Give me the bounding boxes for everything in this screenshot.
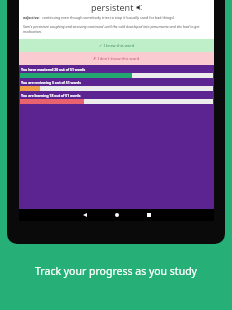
staticText: You have mastered 20 out of 51 words (21, 67, 86, 72)
staticText: persistent (91, 1, 134, 13)
button[interactable]: Back (76, 209, 94, 221)
staticText: continuing even though somebody tries to… (42, 15, 175, 20)
staticText: ✓ I knew this word (99, 43, 135, 48)
button[interactable]: Home (108, 209, 126, 221)
staticText: adjective: (23, 15, 40, 20)
button[interactable]: ✓ I knew this word (19, 39, 214, 52)
button[interactable]: ✗ I don't know this word (19, 52, 214, 65)
button[interactable]: Pronounce (136, 4, 143, 11)
staticText: ✗ I don't know this word (93, 56, 140, 61)
staticText: You are reviewing 5 out of 51 words (21, 80, 81, 85)
button[interactable]: Recent apps (140, 209, 158, 221)
staticText: You are learning 18 out of 51 words (21, 93, 81, 98)
staticText: Sam's persistent coughing and sneezing c… (23, 24, 210, 34)
staticText: Track your progress as you study (0, 264, 232, 278)
